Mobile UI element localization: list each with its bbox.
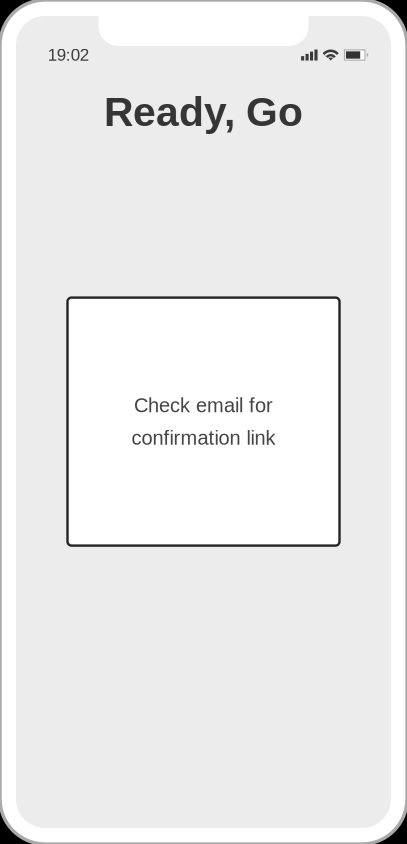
staticText: Ready, Go [104,89,303,135]
button[interactable]: Check email for [67,298,339,546]
staticText: Check email for [134,394,273,416]
staticText: confirmation link [131,427,275,449]
staticText: 19:02 [48,45,89,64]
